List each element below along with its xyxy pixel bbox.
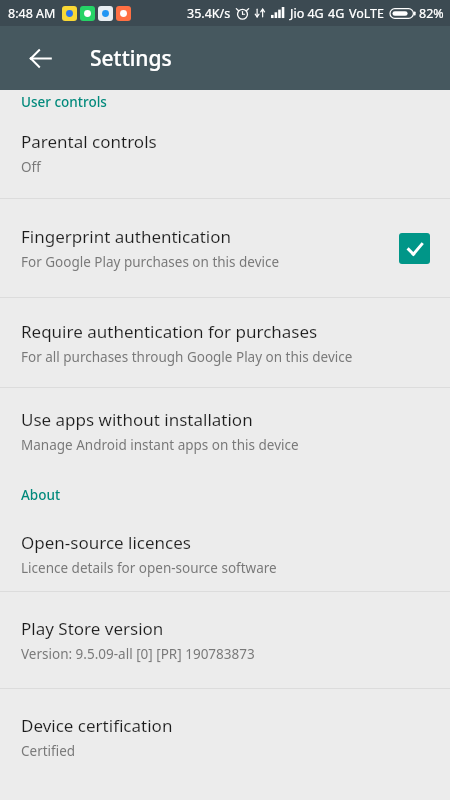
button[interactable]: Back	[18, 36, 62, 80]
staticText: Certified	[21, 742, 76, 760]
staticText: Fingerprint authentication	[21, 225, 232, 248]
button[interactable]: Use apps without installation	[0, 388, 450, 473]
staticText: Device certification	[21, 714, 173, 737]
button[interactable]: Play Store version	[0, 592, 450, 688]
button[interactable]: Fingerprint authentication	[0, 199, 450, 297]
staticText: Use apps without installation	[21, 408, 253, 431]
staticText: 4G	[328, 5, 345, 22]
staticText: VoLTE	[349, 5, 385, 22]
button[interactable]: Device certification	[0, 689, 450, 785]
staticText: Licence details for open-source software	[21, 559, 277, 577]
staticText: Manage Android instant apps on this devi…	[21, 436, 299, 454]
staticText: 35.4K/s	[187, 5, 231, 22]
staticText: Open-source licences	[21, 531, 191, 554]
button[interactable]: Require authentication for purchases	[0, 298, 450, 387]
staticText: Off	[21, 158, 41, 176]
staticText: For all purchases through Google Play on…	[21, 348, 353, 366]
button[interactable]: Fingerprint authentication enabled	[399, 233, 430, 264]
staticText: Require authentication for purchases	[21, 320, 318, 343]
button[interactable]: Parental controls	[0, 107, 450, 198]
staticText: For Google Play purchases on this device	[21, 253, 280, 271]
staticText: 82%	[419, 5, 444, 22]
staticText: Jio 4G	[290, 5, 324, 22]
staticText: Play Store version	[21, 617, 164, 640]
staticText: Version: 9.5.09-all [0] [PR] 190783873	[21, 645, 255, 663]
staticText: Settings	[90, 44, 172, 73]
button[interactable]: Open-source licences	[0, 517, 450, 591]
staticText: 8:48 AM	[8, 5, 56, 22]
staticText: User controls	[21, 93, 107, 110]
staticText: About	[21, 486, 61, 504]
staticText: Parental controls	[21, 130, 157, 153]
